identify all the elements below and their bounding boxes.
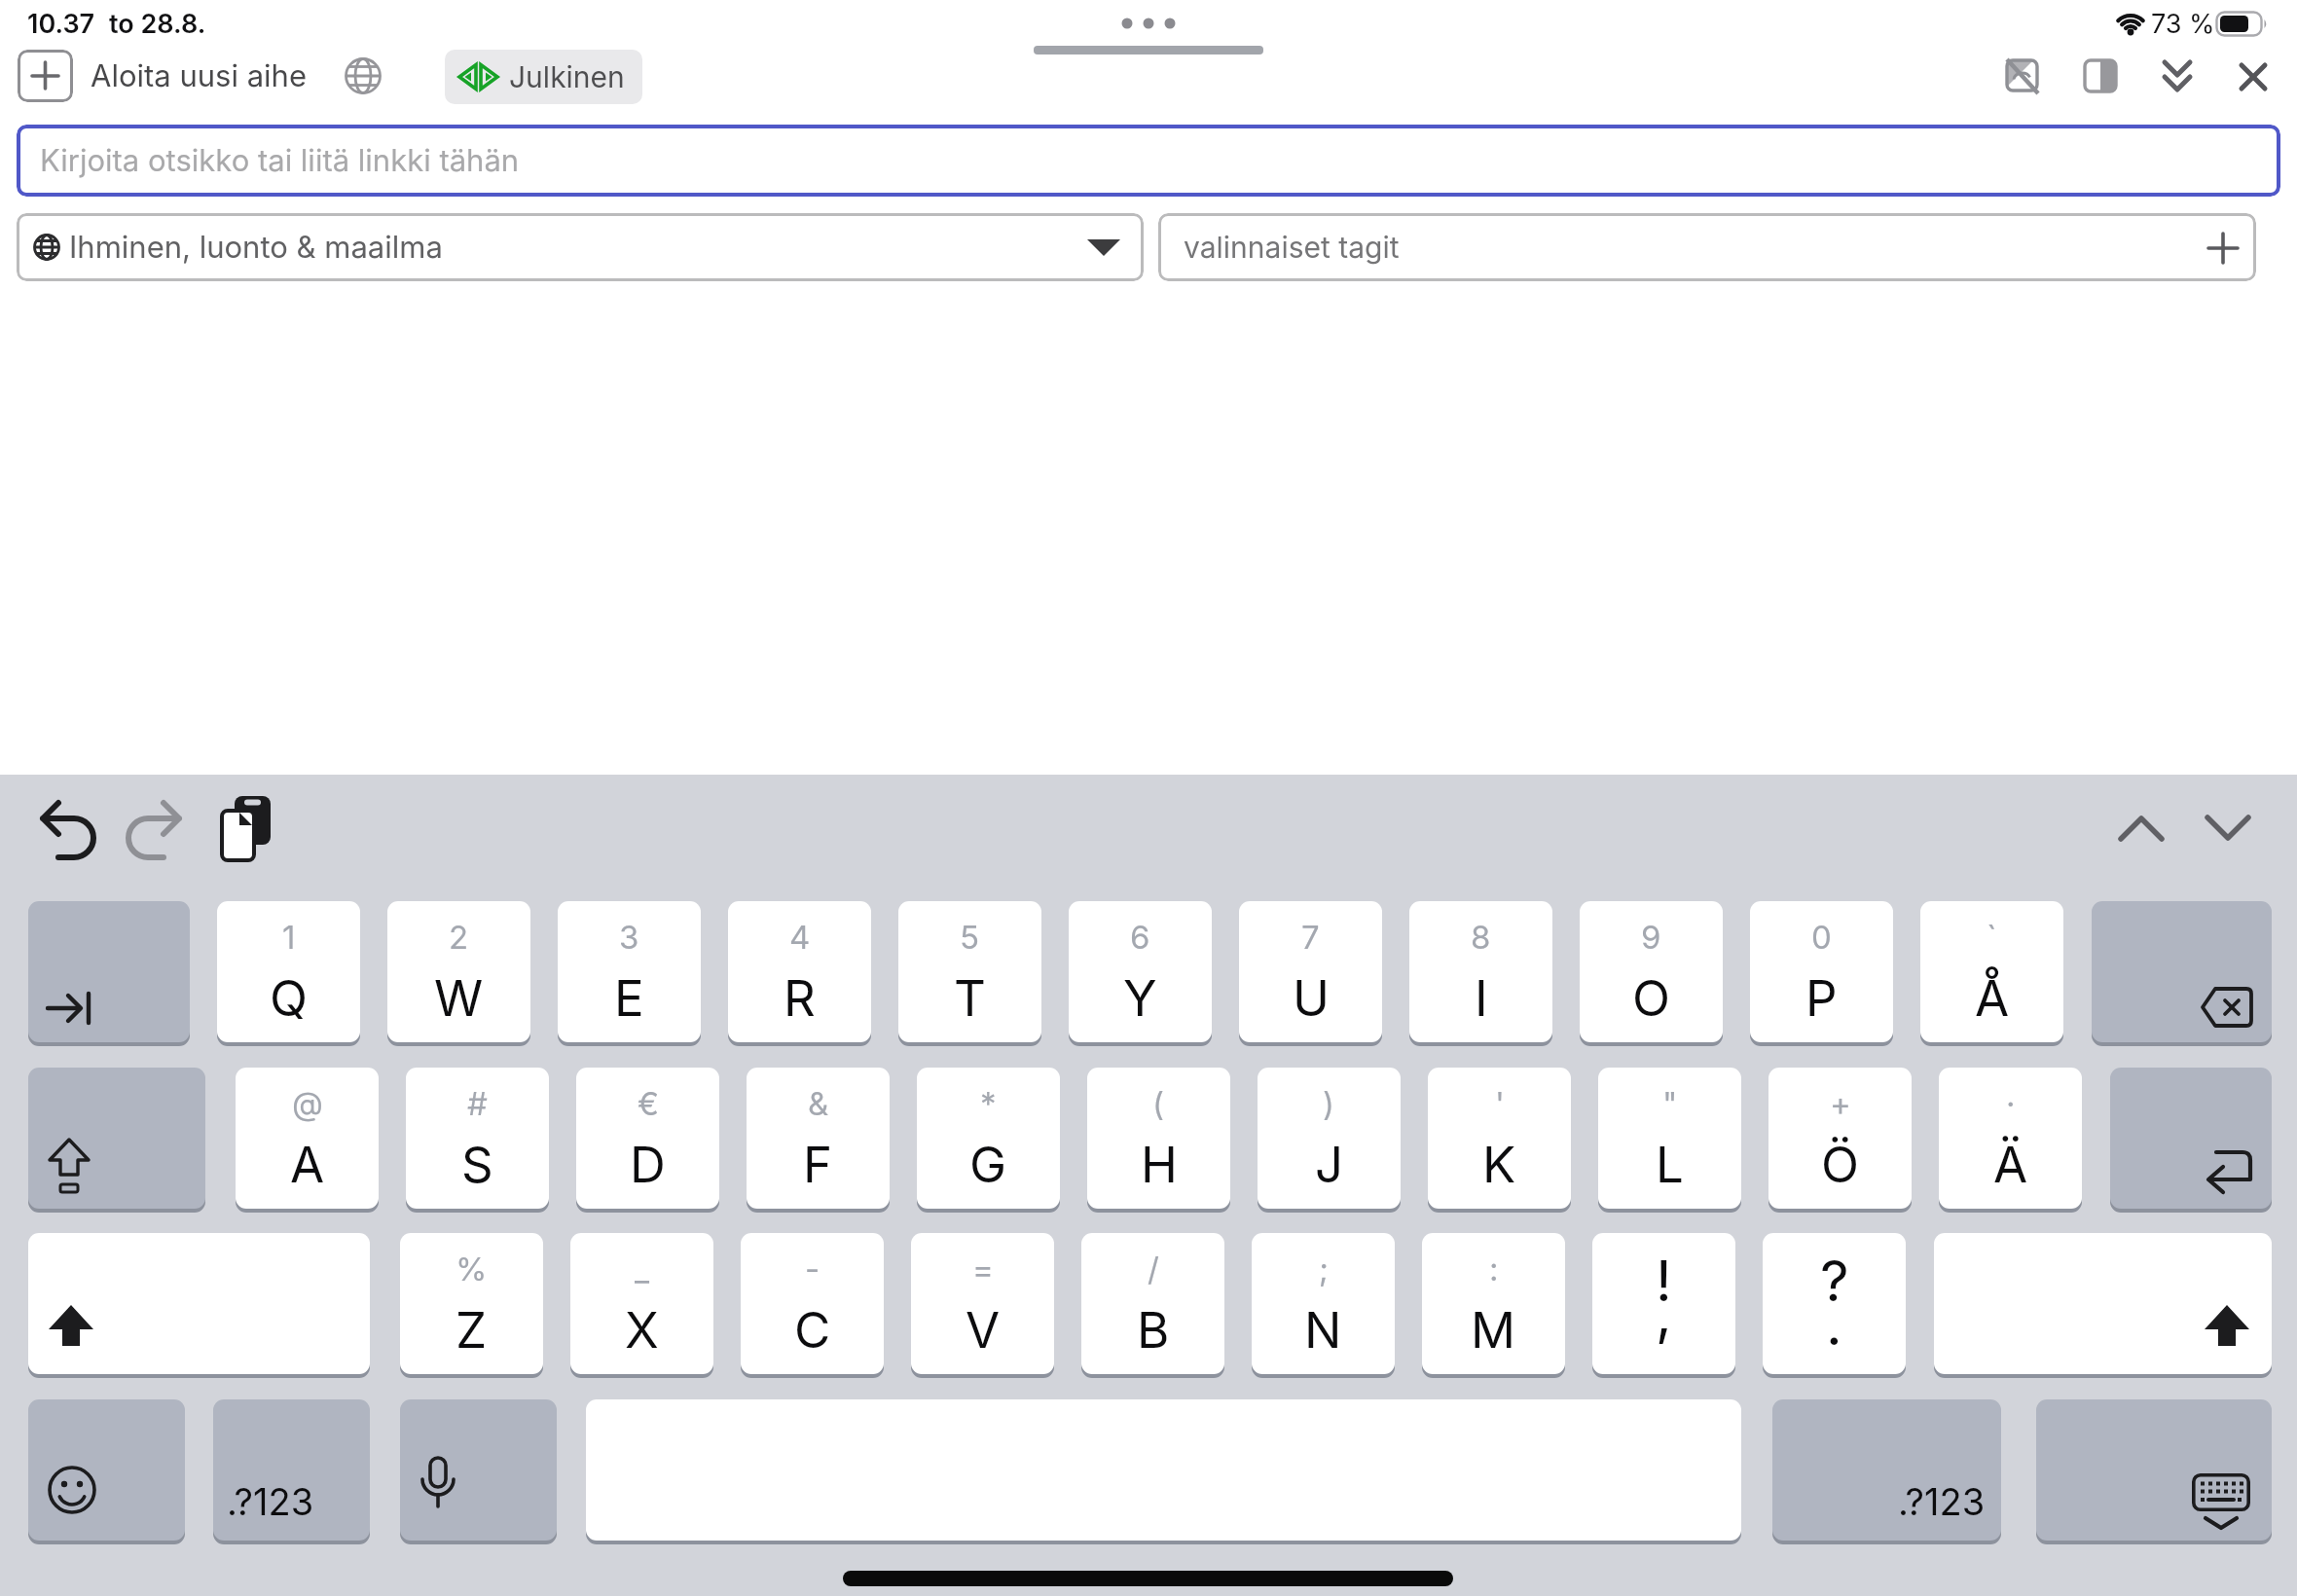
button[interactable]: Julkinen (445, 50, 642, 104)
staticText: W (434, 968, 484, 1029)
button[interactable]: # (406, 1068, 549, 1209)
staticText: ? (1820, 1247, 1849, 1315)
button[interactable]: ' (1428, 1068, 1571, 1209)
button[interactable] (28, 1233, 370, 1374)
button[interactable] (2205, 814, 2251, 843)
staticText: = (972, 1250, 994, 1288)
staticText: 6 (1130, 918, 1150, 957)
button[interactable]: .?123 (213, 1399, 370, 1541)
staticText: ! (1656, 1247, 1672, 1315)
staticText: P (1805, 968, 1838, 1029)
button[interactable]: ( (1087, 1068, 1230, 1209)
staticText: F (803, 1135, 833, 1195)
staticText: Julkinen (509, 59, 625, 94)
button[interactable]: - (741, 1233, 884, 1374)
button[interactable]: 6 (1069, 901, 1212, 1042)
staticText: + (1830, 1084, 1851, 1123)
button[interactable] (2092, 901, 2272, 1042)
staticText: * (980, 1084, 997, 1123)
staticText: Aloita uusi aihe (91, 57, 307, 94)
button[interactable]: 4 (728, 901, 871, 1042)
staticText: D (630, 1135, 666, 1195)
button[interactable] (2118, 814, 2165, 843)
staticText: # (467, 1084, 488, 1123)
button[interactable]: · (1939, 1068, 2082, 1209)
button[interactable] (586, 1399, 1741, 1541)
button[interactable]: " (1598, 1068, 1741, 1209)
staticText: @ (292, 1084, 323, 1123)
button[interactable] (2036, 1399, 2272, 1541)
button[interactable] (2083, 58, 2118, 93)
staticText: & (808, 1084, 829, 1123)
staticText: Y (1123, 968, 1157, 1029)
button[interactable]: % (400, 1233, 543, 1374)
button[interactable]: 8 (1409, 901, 1552, 1042)
staticText: 9 (1641, 918, 1661, 957)
button[interactable] (1934, 1233, 2272, 1374)
staticText: to 28.8. (109, 8, 206, 40)
button[interactable]: / (1081, 1233, 1224, 1374)
staticText: I (1475, 968, 1488, 1029)
button[interactable]: valinnaiset tagit (1158, 213, 2256, 281)
staticText: X (625, 1300, 659, 1360)
button[interactable]: ) (1258, 1068, 1401, 1209)
staticText: 1 (282, 918, 296, 957)
button[interactable]: Ihminen, luonto & maailma (17, 213, 1144, 281)
button[interactable] (2110, 1068, 2272, 1209)
button[interactable]: .?123 (1772, 1399, 2001, 1541)
button[interactable]: 2 (387, 901, 530, 1042)
button[interactable]: = (911, 1233, 1054, 1374)
button[interactable] (220, 796, 273, 862)
staticText: C (794, 1300, 831, 1360)
staticText: Z (456, 1300, 488, 1360)
button[interactable] (18, 50, 73, 102)
button[interactable]: + (1768, 1068, 1912, 1209)
button[interactable]: * (917, 1068, 1060, 1209)
button[interactable]: ` (1920, 901, 2063, 1042)
staticText: B (1137, 1300, 1170, 1360)
button[interactable] (28, 1068, 205, 1209)
button[interactable]: ? (1763, 1233, 1906, 1374)
button[interactable] (400, 1399, 557, 1541)
button[interactable]: 7 (1239, 901, 1382, 1042)
button[interactable]: 1 (217, 901, 360, 1042)
button[interactable]: 0 (1750, 901, 1893, 1042)
button[interactable] (343, 55, 383, 96)
button[interactable]: 5 (898, 901, 1041, 1042)
staticText: Q (270, 968, 308, 1029)
staticText: E (614, 968, 644, 1029)
staticText: T (954, 968, 986, 1029)
button[interactable]: @ (236, 1068, 379, 1209)
button[interactable]: ! (1592, 1233, 1735, 1374)
staticText: O (1632, 968, 1670, 1029)
button[interactable] (121, 800, 183, 860)
staticText: 8 (1471, 918, 1491, 957)
staticText: .?123 (227, 1479, 314, 1524)
button[interactable]: 9 (1580, 901, 1723, 1042)
button[interactable]: 3 (558, 901, 701, 1042)
staticText: ) (1323, 1084, 1335, 1123)
staticText: J (1315, 1135, 1344, 1195)
button[interactable] (2163, 60, 2192, 93)
button[interactable] (2241, 64, 2266, 90)
staticText: _ (635, 1250, 650, 1288)
button[interactable] (2005, 58, 2040, 93)
button[interactable]: € (576, 1068, 719, 1209)
button[interactable] (1119, 14, 1178, 33)
button[interactable] (39, 800, 101, 860)
button[interactable]: & (747, 1068, 890, 1209)
button[interactable] (28, 901, 190, 1042)
button[interactable]: _ (570, 1233, 713, 1374)
staticText: A (290, 1135, 325, 1195)
staticText: / (1148, 1250, 1159, 1288)
staticText: Ihminen, luonto & maailma (69, 229, 443, 266)
staticText: valinnaiset tagit (1184, 230, 1400, 265)
button[interactable]: ; (1252, 1233, 1395, 1374)
staticText: H (1141, 1135, 1178, 1195)
staticText: - (805, 1250, 820, 1288)
staticText: Å (1975, 968, 2010, 1029)
button[interactable]: : (1422, 1233, 1565, 1374)
staticText: V (966, 1300, 1001, 1360)
button[interactable]: Kirjoita otsikko tai liitä linkki tähän (17, 125, 2280, 197)
button[interactable] (28, 1399, 185, 1541)
